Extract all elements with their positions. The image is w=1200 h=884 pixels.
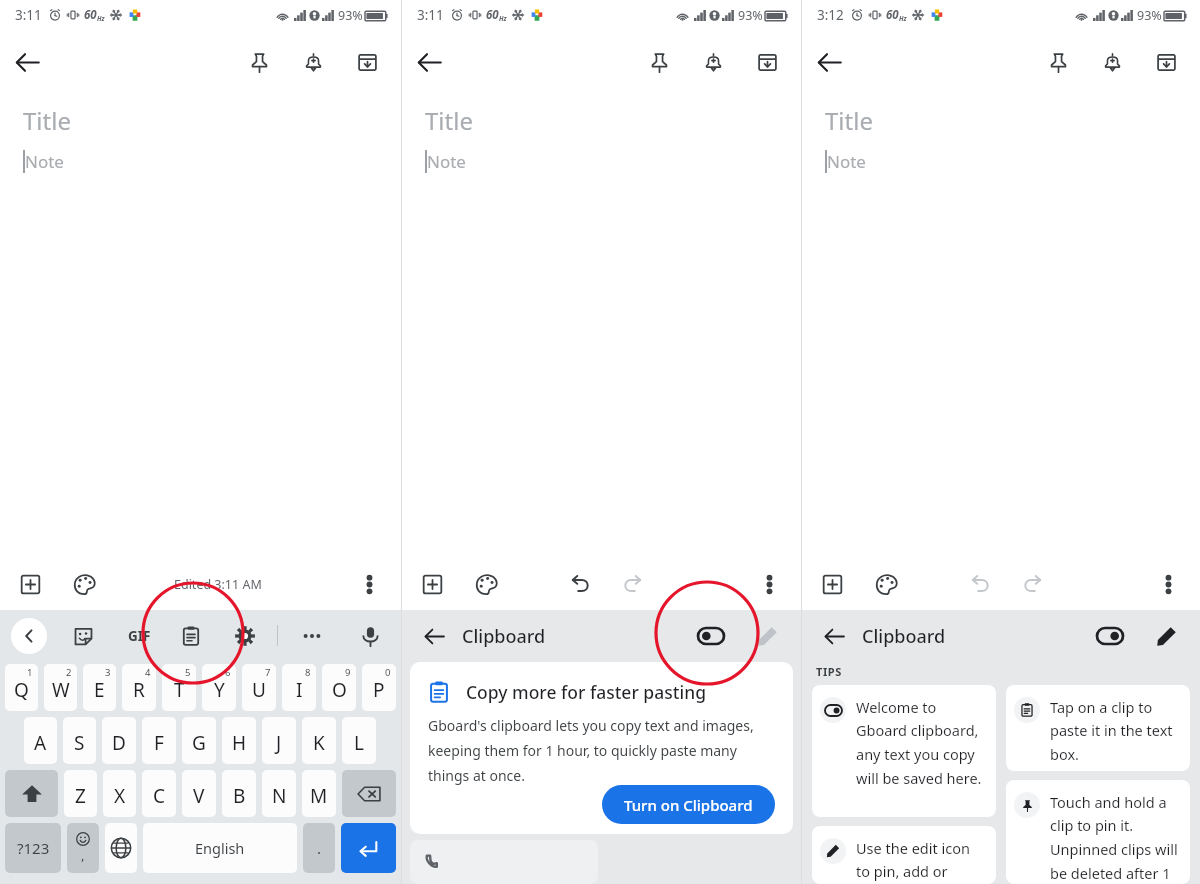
button[interactable]: L bbox=[342, 717, 376, 764]
staticText: 4 bbox=[145, 666, 151, 679]
button[interactable]: W bbox=[44, 664, 77, 711]
staticText: 3:11 bbox=[417, 6, 444, 24]
button[interactable]: English bbox=[143, 823, 297, 873]
staticText: TIPS bbox=[816, 664, 842, 679]
button[interactable]: Back bbox=[414, 616, 454, 656]
button[interactable]: E bbox=[83, 664, 116, 711]
staticText: Hz bbox=[97, 14, 105, 23]
button[interactable]: A bbox=[24, 717, 57, 764]
button[interactable]: U bbox=[242, 664, 276, 711]
button[interactable]: Pin note bbox=[233, 36, 285, 88]
staticText: 9 bbox=[345, 666, 351, 679]
button[interactable]: Back bbox=[802, 35, 856, 89]
staticText: P bbox=[373, 677, 385, 703]
button[interactable]: Back bbox=[814, 616, 854, 656]
button[interactable]: N bbox=[262, 770, 296, 817]
button[interactable]: Turn on Clipboard bbox=[602, 785, 775, 824]
button[interactable]: Enter bbox=[341, 823, 396, 873]
button[interactable]: Emoji and comma bbox=[67, 823, 99, 873]
button[interactable]: Color palette bbox=[464, 562, 508, 606]
button[interactable]: J bbox=[262, 717, 296, 764]
button[interactable]: D bbox=[102, 717, 136, 764]
button[interactable]: Toggle clipboard bbox=[689, 614, 733, 658]
staticText: 1 bbox=[27, 666, 33, 679]
staticText: W bbox=[52, 677, 70, 703]
button[interactable]: Backspace bbox=[342, 770, 396, 817]
staticText: 3:12 bbox=[817, 6, 844, 24]
button[interactable]: B bbox=[222, 770, 256, 817]
button[interactable]: F bbox=[142, 717, 176, 764]
button[interactable]: Reminder bbox=[687, 36, 739, 88]
button[interactable]: . bbox=[303, 823, 335, 873]
staticText: Title bbox=[23, 104, 71, 137]
button[interactable]: T bbox=[162, 664, 196, 711]
button[interactable]: Welcome to Gboard clipboard, any text yo… bbox=[812, 685, 996, 817]
staticText: ?123 bbox=[17, 838, 50, 858]
button[interactable]: C bbox=[142, 770, 176, 817]
button[interactable]: Stickers bbox=[65, 618, 101, 654]
staticText: 3 bbox=[105, 666, 111, 679]
staticText: Gboard's clipboard lets you copy text an… bbox=[428, 716, 775, 785]
button[interactable]: Toggle clipboard bbox=[1088, 614, 1132, 658]
button[interactable]: Tap on a clip to paste it in the text bo… bbox=[1006, 685, 1190, 771]
staticText: 2 bbox=[66, 666, 72, 679]
button[interactable]: Redo bbox=[1010, 562, 1054, 606]
button[interactable]: Back bbox=[402, 35, 456, 89]
button[interactable]: Add item bbox=[410, 562, 454, 606]
staticText: Edited 3:11 AM bbox=[174, 576, 262, 593]
button[interactable]: X bbox=[103, 770, 136, 817]
button[interactable]: GIF bbox=[119, 618, 159, 654]
staticText: B bbox=[233, 783, 246, 809]
button[interactable]: ?123 bbox=[5, 823, 61, 873]
button[interactable]: Collapse toolbar bbox=[11, 618, 47, 654]
button[interactable]: Z bbox=[64, 770, 97, 817]
button[interactable]: Edit clips bbox=[745, 614, 789, 658]
button[interactable]: Color palette bbox=[62, 562, 106, 606]
button[interactable]: Archive bbox=[341, 36, 393, 88]
button[interactable]: Clipboard bbox=[173, 618, 209, 654]
button[interactable]: G bbox=[182, 717, 216, 764]
button[interactable]: P bbox=[362, 664, 396, 711]
button[interactable]: M bbox=[302, 770, 336, 817]
button[interactable]: More options bbox=[747, 562, 791, 606]
button[interactable]: I bbox=[282, 664, 316, 711]
button[interactable]: Archive bbox=[1140, 36, 1192, 88]
staticText: Hz bbox=[499, 14, 507, 23]
button[interactable]: Reminder bbox=[1086, 36, 1138, 88]
button[interactable]: Use the edit icon to pin, add or delete … bbox=[812, 826, 996, 884]
button[interactable]: Archive bbox=[741, 36, 793, 88]
button[interactable]: Pin note bbox=[1032, 36, 1084, 88]
button[interactable]: Add item bbox=[810, 562, 854, 606]
button[interactable]: Add item bbox=[8, 562, 52, 606]
button[interactable]: Shift bbox=[5, 770, 58, 817]
staticText: F bbox=[154, 730, 164, 756]
button[interactable]: More options bbox=[1146, 562, 1190, 606]
button[interactable]: Edit clips bbox=[1144, 614, 1188, 658]
button[interactable]: S bbox=[63, 717, 96, 764]
button[interactable]: More options bbox=[347, 562, 391, 606]
button[interactable]: Pin note bbox=[633, 36, 685, 88]
staticText: Title bbox=[425, 104, 473, 137]
button[interactable] bbox=[410, 840, 598, 884]
button[interactable]: Reminder bbox=[287, 36, 339, 88]
staticText: Use the edit icon to pin, add or delete … bbox=[856, 838, 986, 884]
button[interactable]: V bbox=[182, 770, 216, 817]
button[interactable]: Change language bbox=[105, 823, 137, 873]
staticText: Note bbox=[427, 150, 466, 173]
button[interactable]: Touch and hold a clip to pin it. Unpinne… bbox=[1006, 780, 1190, 884]
button[interactable]: H bbox=[222, 717, 256, 764]
button[interactable]: R bbox=[122, 664, 156, 711]
button[interactable]: Back bbox=[0, 35, 54, 89]
button[interactable]: Undo bbox=[558, 562, 602, 606]
button[interactable]: Redo bbox=[610, 562, 654, 606]
button[interactable]: More tools bbox=[294, 618, 330, 654]
button[interactable]: O bbox=[322, 664, 356, 711]
button[interactable]: Undo bbox=[958, 562, 1002, 606]
button[interactable]: Keyboard settings bbox=[227, 618, 263, 654]
button[interactable]: Q bbox=[5, 664, 38, 711]
button[interactable]: Y bbox=[202, 664, 236, 711]
staticText: Touch and hold a clip to pin it. Unpinne… bbox=[1050, 792, 1180, 884]
button[interactable]: Color palette bbox=[864, 562, 908, 606]
button[interactable]: K bbox=[302, 717, 336, 764]
button[interactable]: Voice input bbox=[352, 618, 388, 654]
